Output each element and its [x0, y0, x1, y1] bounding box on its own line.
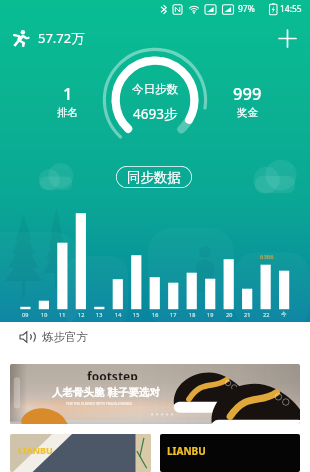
staticText: 20 — [226, 311, 233, 318]
staticText: footstep — [87, 368, 138, 380]
staticText: 17 — [170, 311, 177, 318]
button[interactable]: LIANBU — [10, 434, 151, 472]
staticText: 11 — [59, 311, 66, 318]
staticText: 人老骨头脆 鞋子要选对 — [52, 385, 160, 398]
button[interactable]: 炼步官方 — [0, 322, 310, 352]
staticText: 21 — [244, 311, 251, 318]
button[interactable]: footstep — [10, 364, 300, 424]
staticText: 6366 — [260, 253, 274, 261]
staticText: 奖金 — [237, 106, 258, 119]
staticText: 57.72万 — [38, 29, 85, 47]
staticText: 10 — [41, 311, 48, 318]
staticText: 14:55 — [280, 3, 302, 15]
staticText: 排名 — [57, 106, 78, 119]
staticText: 19 — [207, 311, 214, 318]
staticText: 12 — [78, 311, 85, 318]
staticText: LIANBU — [167, 444, 206, 458]
staticText: LIANBU — [18, 444, 53, 456]
button[interactable]: LIANBU — [160, 434, 300, 472]
staticText: 今日步数 — [132, 82, 178, 96]
staticText: 15 — [133, 311, 140, 318]
staticText: 今 — [281, 311, 287, 318]
staticText: 14 — [115, 311, 122, 318]
staticText: 18 — [189, 311, 196, 318]
staticText: 97% — [238, 3, 255, 15]
staticText: 1 — [63, 82, 73, 104]
staticText: 炼步官方 — [42, 330, 88, 344]
staticText: 999 — [233, 82, 262, 104]
staticText: 13 — [96, 311, 103, 318]
button[interactable]: 同步数据 — [116, 166, 192, 188]
staticText: 16 — [152, 311, 159, 318]
staticText: 4693步 — [133, 105, 178, 123]
staticText: FOR THE ELDERLY WITH FRAGILE BONES — [66, 401, 133, 406]
staticText: 09 — [22, 311, 29, 318]
staticText: 同步数据 — [127, 169, 181, 186]
button[interactable]: Add — [272, 23, 302, 53]
staticText: 22 — [263, 311, 270, 318]
